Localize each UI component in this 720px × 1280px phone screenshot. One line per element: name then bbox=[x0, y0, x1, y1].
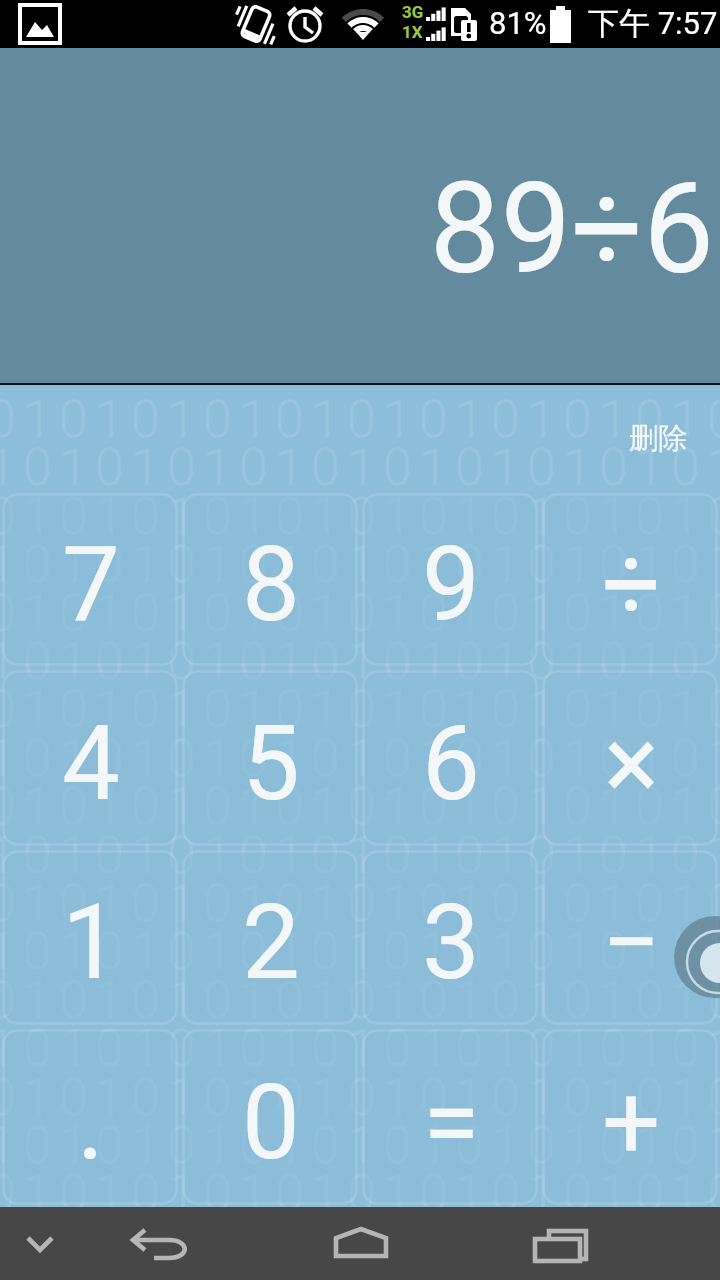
button[interactable]: 2 bbox=[180, 848, 360, 1027]
staticText: − bbox=[602, 882, 661, 1003]
staticText: 0 bbox=[275, 583, 304, 644]
staticText: 0 bbox=[23, 631, 52, 692]
staticText: 0 bbox=[635, 389, 664, 450]
staticText: 1 bbox=[707, 825, 720, 886]
button[interactable]: . bbox=[0, 1027, 180, 1207]
staticText: 1 bbox=[239, 389, 268, 450]
staticText: 1 bbox=[563, 1018, 592, 1079]
staticText: 1 bbox=[275, 534, 304, 595]
staticText: 0 bbox=[491, 486, 520, 547]
staticText: 1 bbox=[383, 389, 412, 450]
staticText: 0 bbox=[527, 1212, 556, 1273]
staticText: 1 bbox=[23, 389, 52, 450]
staticText: 0 bbox=[383, 1018, 412, 1079]
staticText: 81% bbox=[489, 5, 547, 41]
button[interactable]: − bbox=[540, 848, 720, 1027]
staticText: 0 bbox=[527, 825, 556, 886]
staticText: 1 bbox=[131, 1212, 160, 1273]
button[interactable]: 5 bbox=[180, 668, 360, 848]
staticText: 0 bbox=[311, 825, 340, 886]
staticText: 1 bbox=[59, 825, 88, 886]
button[interactable]: Back bbox=[96, 1207, 224, 1280]
staticText: 1 bbox=[167, 679, 196, 740]
button[interactable]: 0 bbox=[180, 1027, 360, 1207]
staticText: 1 bbox=[0, 1115, 16, 1176]
staticText: 0 bbox=[563, 1163, 592, 1224]
staticText: 1 bbox=[599, 486, 628, 547]
staticText: 1 bbox=[599, 583, 628, 644]
staticText: 1 bbox=[599, 970, 628, 1031]
staticText: 0 bbox=[203, 389, 232, 450]
button[interactable]: + bbox=[540, 1027, 720, 1207]
staticText: 1 bbox=[0, 534, 16, 595]
button[interactable]: 删除 bbox=[629, 420, 687, 457]
staticText: 1 bbox=[671, 486, 700, 547]
staticText: 1 bbox=[347, 534, 376, 595]
button[interactable]: 4 bbox=[0, 668, 180, 848]
button[interactable]: = bbox=[360, 1027, 540, 1207]
staticText: 1 bbox=[455, 873, 484, 934]
staticText: 1 bbox=[203, 631, 232, 692]
button[interactable]: 7 bbox=[0, 491, 180, 668]
staticText: 0 bbox=[599, 437, 628, 498]
staticText: 1 bbox=[62, 882, 120, 1003]
staticText: 1 bbox=[455, 679, 484, 740]
button[interactable]: 9 bbox=[360, 491, 540, 668]
staticText: 1 bbox=[59, 728, 88, 789]
staticText: 0 bbox=[167, 728, 196, 789]
staticText: 1 bbox=[239, 679, 268, 740]
staticText: 0 bbox=[59, 1163, 88, 1224]
staticText: 1 bbox=[167, 1163, 196, 1224]
button[interactable]: 6 bbox=[360, 668, 540, 848]
button[interactable]: ÷ bbox=[540, 491, 720, 668]
staticText: 0 bbox=[635, 583, 664, 644]
staticText: 0 bbox=[59, 873, 88, 934]
staticText: 0 bbox=[419, 1067, 448, 1128]
button[interactable]: × bbox=[540, 668, 720, 848]
staticText: 0 bbox=[527, 631, 556, 692]
staticText: 0 bbox=[347, 679, 376, 740]
staticText: 1 bbox=[671, 1163, 700, 1224]
button[interactable]: 1 bbox=[0, 848, 180, 1027]
staticText: 1 bbox=[275, 1018, 304, 1079]
staticText: 0 bbox=[455, 534, 484, 595]
staticText: 1 bbox=[707, 1018, 720, 1079]
staticText: 1 bbox=[167, 1067, 196, 1128]
staticText: 1 bbox=[419, 534, 448, 595]
button[interactable]: Recents bbox=[501, 1207, 621, 1280]
button[interactable]: Hide keyboard bbox=[0, 1207, 80, 1280]
staticText: 1 bbox=[563, 631, 592, 692]
staticText: 0 bbox=[707, 970, 720, 1031]
staticText: 0 bbox=[455, 728, 484, 789]
button[interactable]: Home bbox=[301, 1207, 421, 1280]
staticText: 1 bbox=[563, 1212, 592, 1273]
staticText: 1 bbox=[599, 1163, 628, 1224]
staticText: 0 bbox=[275, 1163, 304, 1224]
staticText: 0 bbox=[167, 631, 196, 692]
staticText: 0 bbox=[455, 1115, 484, 1176]
button[interactable]: 8 bbox=[180, 491, 360, 668]
staticText: 1 bbox=[59, 1115, 88, 1176]
button[interactable]: 3 bbox=[360, 848, 540, 1027]
staticText: ÷ bbox=[602, 524, 661, 645]
staticText: 1 bbox=[491, 1018, 520, 1079]
staticText: 0 bbox=[239, 534, 268, 595]
staticText: 1 bbox=[95, 389, 124, 450]
